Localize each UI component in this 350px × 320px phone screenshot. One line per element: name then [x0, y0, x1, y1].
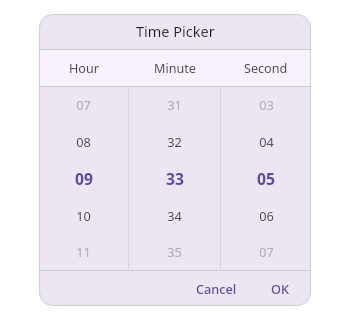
staticText: Hour — [69, 60, 99, 77]
staticText: 34 — [167, 207, 182, 224]
staticText: 32 — [167, 133, 182, 150]
staticText: 09 — [75, 168, 93, 189]
staticText: Minute — [154, 60, 196, 77]
button[interactable]: 07 — [221, 235, 311, 270]
button[interactable]: 33 — [129, 161, 220, 198]
button[interactable]: OK — [254, 273, 306, 304]
staticText: 03 — [259, 96, 274, 113]
staticText: 33 — [166, 168, 184, 189]
staticText: Second — [244, 60, 288, 77]
button[interactable]: 08 — [39, 124, 128, 161]
staticText: 04 — [259, 133, 274, 150]
button[interactable]: 31 — [129, 87, 220, 124]
staticText: Time Picker — [136, 21, 215, 41]
button[interactable]: 03 — [221, 87, 311, 124]
button[interactable]: Cancel — [179, 273, 254, 304]
staticText: 07 — [259, 243, 274, 260]
button[interactable]: 04 — [221, 124, 311, 161]
staticText: 35 — [167, 243, 182, 260]
button[interactable]: 06 — [221, 198, 311, 235]
button[interactable]: 32 — [129, 124, 220, 161]
button[interactable]: 07 — [39, 87, 128, 124]
staticText: Cancel — [196, 280, 237, 297]
staticText: OK — [271, 280, 289, 297]
staticText: 31 — [167, 96, 182, 113]
staticText: 07 — [76, 96, 91, 113]
button[interactable]: 10 — [39, 198, 128, 235]
staticText: 11 — [76, 243, 91, 260]
button[interactable]: 35 — [129, 235, 220, 270]
button[interactable]: 05 — [221, 161, 311, 198]
button[interactable]: 09 — [39, 161, 128, 198]
staticText: 05 — [257, 168, 275, 189]
button[interactable]: 11 — [39, 235, 128, 270]
staticText: 10 — [76, 207, 91, 224]
staticText: 06 — [259, 207, 274, 224]
button[interactable]: 34 — [129, 198, 220, 235]
staticText: 08 — [76, 133, 91, 150]
